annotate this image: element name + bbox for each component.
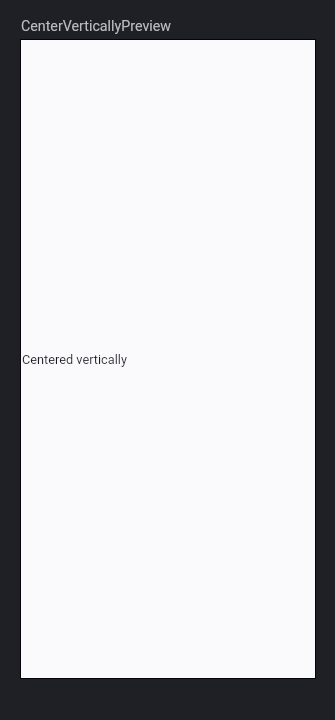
staticText: CenterVerticallyPreview [21,18,172,35]
staticText: Centered vertically [22,352,127,367]
